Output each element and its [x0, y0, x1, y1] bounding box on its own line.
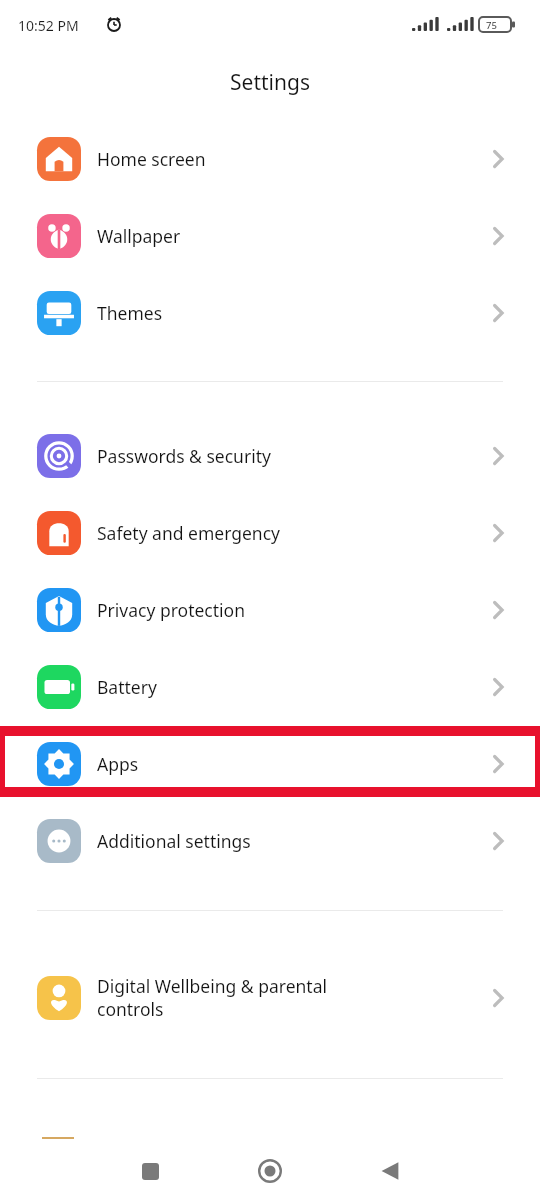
staticText: Home screen: [97, 147, 206, 171]
staticText: 75: [486, 19, 497, 32]
staticText: Wallpaper: [97, 224, 181, 248]
staticText: Apps: [97, 752, 139, 776]
staticText: Privacy protection: [97, 598, 245, 622]
button[interactable]: Home screen: [0, 120, 540, 197]
button[interactable]: Digital Wellbeing & parental controls: [0, 959, 540, 1036]
staticText: Themes: [97, 301, 163, 325]
button[interactable]: Passwords & security: [0, 417, 540, 494]
button[interactable]: Recent apps: [128, 1149, 172, 1193]
button[interactable]: Themes: [0, 274, 540, 351]
button[interactable]: Back: [368, 1149, 412, 1193]
staticText: Settings: [0, 68, 540, 97]
button[interactable]: Safety and emergency: [0, 494, 540, 571]
button[interactable]: Privacy protection: [0, 571, 540, 648]
staticText: Battery: [97, 675, 157, 699]
staticText: Passwords & security: [97, 444, 271, 468]
button[interactable]: Battery: [0, 648, 540, 725]
staticText: Digital Wellbeing & parental controls: [97, 974, 328, 1021]
button[interactable]: Additional settings: [0, 802, 540, 879]
staticText: Additional settings: [97, 829, 251, 853]
button[interactable]: Wallpaper: [0, 197, 540, 274]
button[interactable]: Home: [248, 1149, 292, 1193]
button[interactable]: Apps: [0, 725, 540, 802]
staticText: Safety and emergency: [97, 521, 280, 545]
staticText: 10:52 PM: [18, 16, 79, 35]
